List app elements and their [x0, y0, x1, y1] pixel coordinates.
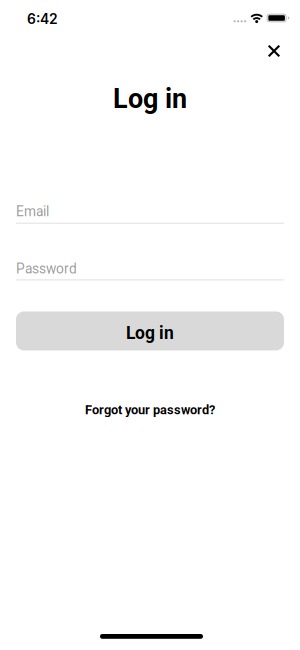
- button[interactable]: Email: [16, 204, 284, 224]
- staticText: Forgot your password?: [85, 402, 215, 417]
- staticText: Email: [16, 204, 49, 220]
- staticText: Log in: [113, 83, 187, 115]
- staticText: 6:42: [27, 11, 58, 27]
- button[interactable]: Forgot your password?: [85, 402, 215, 417]
- staticText: Password: [16, 261, 77, 277]
- staticText: Log in: [126, 323, 174, 343]
- button[interactable]: [268, 45, 280, 57]
- button[interactable]: Password: [16, 261, 284, 280]
- button[interactable]: Log in: [16, 311, 284, 350]
